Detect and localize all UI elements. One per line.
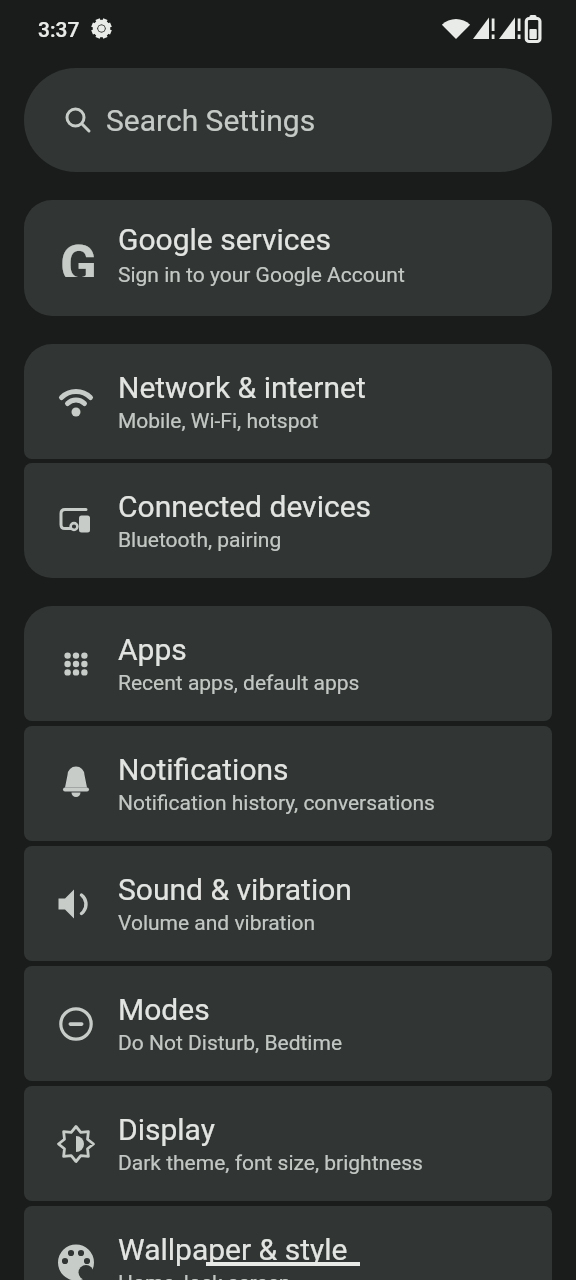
staticText: Modes — [118, 992, 210, 1027]
button[interactable]: Search Settings — [24, 68, 552, 172]
staticText: Home, lock screen — [118, 1271, 291, 1280]
staticText: Do Not Disturb, Bedtime — [118, 1031, 343, 1056]
staticText: 3:37 — [38, 18, 80, 43]
staticText: Sign in to your Google Account — [118, 263, 405, 288]
staticText: G — [60, 233, 97, 277]
staticText: Bluetooth, pairing — [118, 528, 282, 553]
staticText: Display — [118, 1112, 215, 1147]
staticText: Connected devices — [118, 489, 372, 524]
staticText: Search Settings — [106, 103, 316, 138]
staticText: Notifications — [118, 752, 289, 787]
button[interactable]: Apps — [24, 606, 552, 721]
staticText: Volume and vibration — [118, 911, 316, 936]
staticText: Notification history, conversations — [118, 791, 435, 816]
button[interactable]: Connected devices — [24, 463, 552, 578]
button[interactable]: Notifications — [24, 726, 552, 841]
staticText: Recent apps, default apps — [118, 671, 360, 696]
button[interactable]: Modes — [24, 966, 552, 1081]
staticText: Sound & vibration — [118, 872, 352, 907]
staticText: Network & internet — [118, 370, 366, 405]
button[interactable]: Display — [24, 1086, 552, 1201]
staticText: Wallpaper & style — [118, 1232, 348, 1267]
staticText: Mobile, Wi-Fi, hotspot — [118, 409, 319, 434]
staticText: Dark theme, font size, brightness — [118, 1151, 423, 1176]
button[interactable]: Sound & vibration — [24, 846, 552, 961]
button[interactable]: Network & internet — [24, 344, 552, 459]
staticText: Google services — [118, 222, 331, 257]
staticText: Apps — [118, 632, 187, 667]
button[interactable]: G — [24, 200, 552, 316]
button[interactable]: Wallpaper & style — [24, 1206, 552, 1280]
